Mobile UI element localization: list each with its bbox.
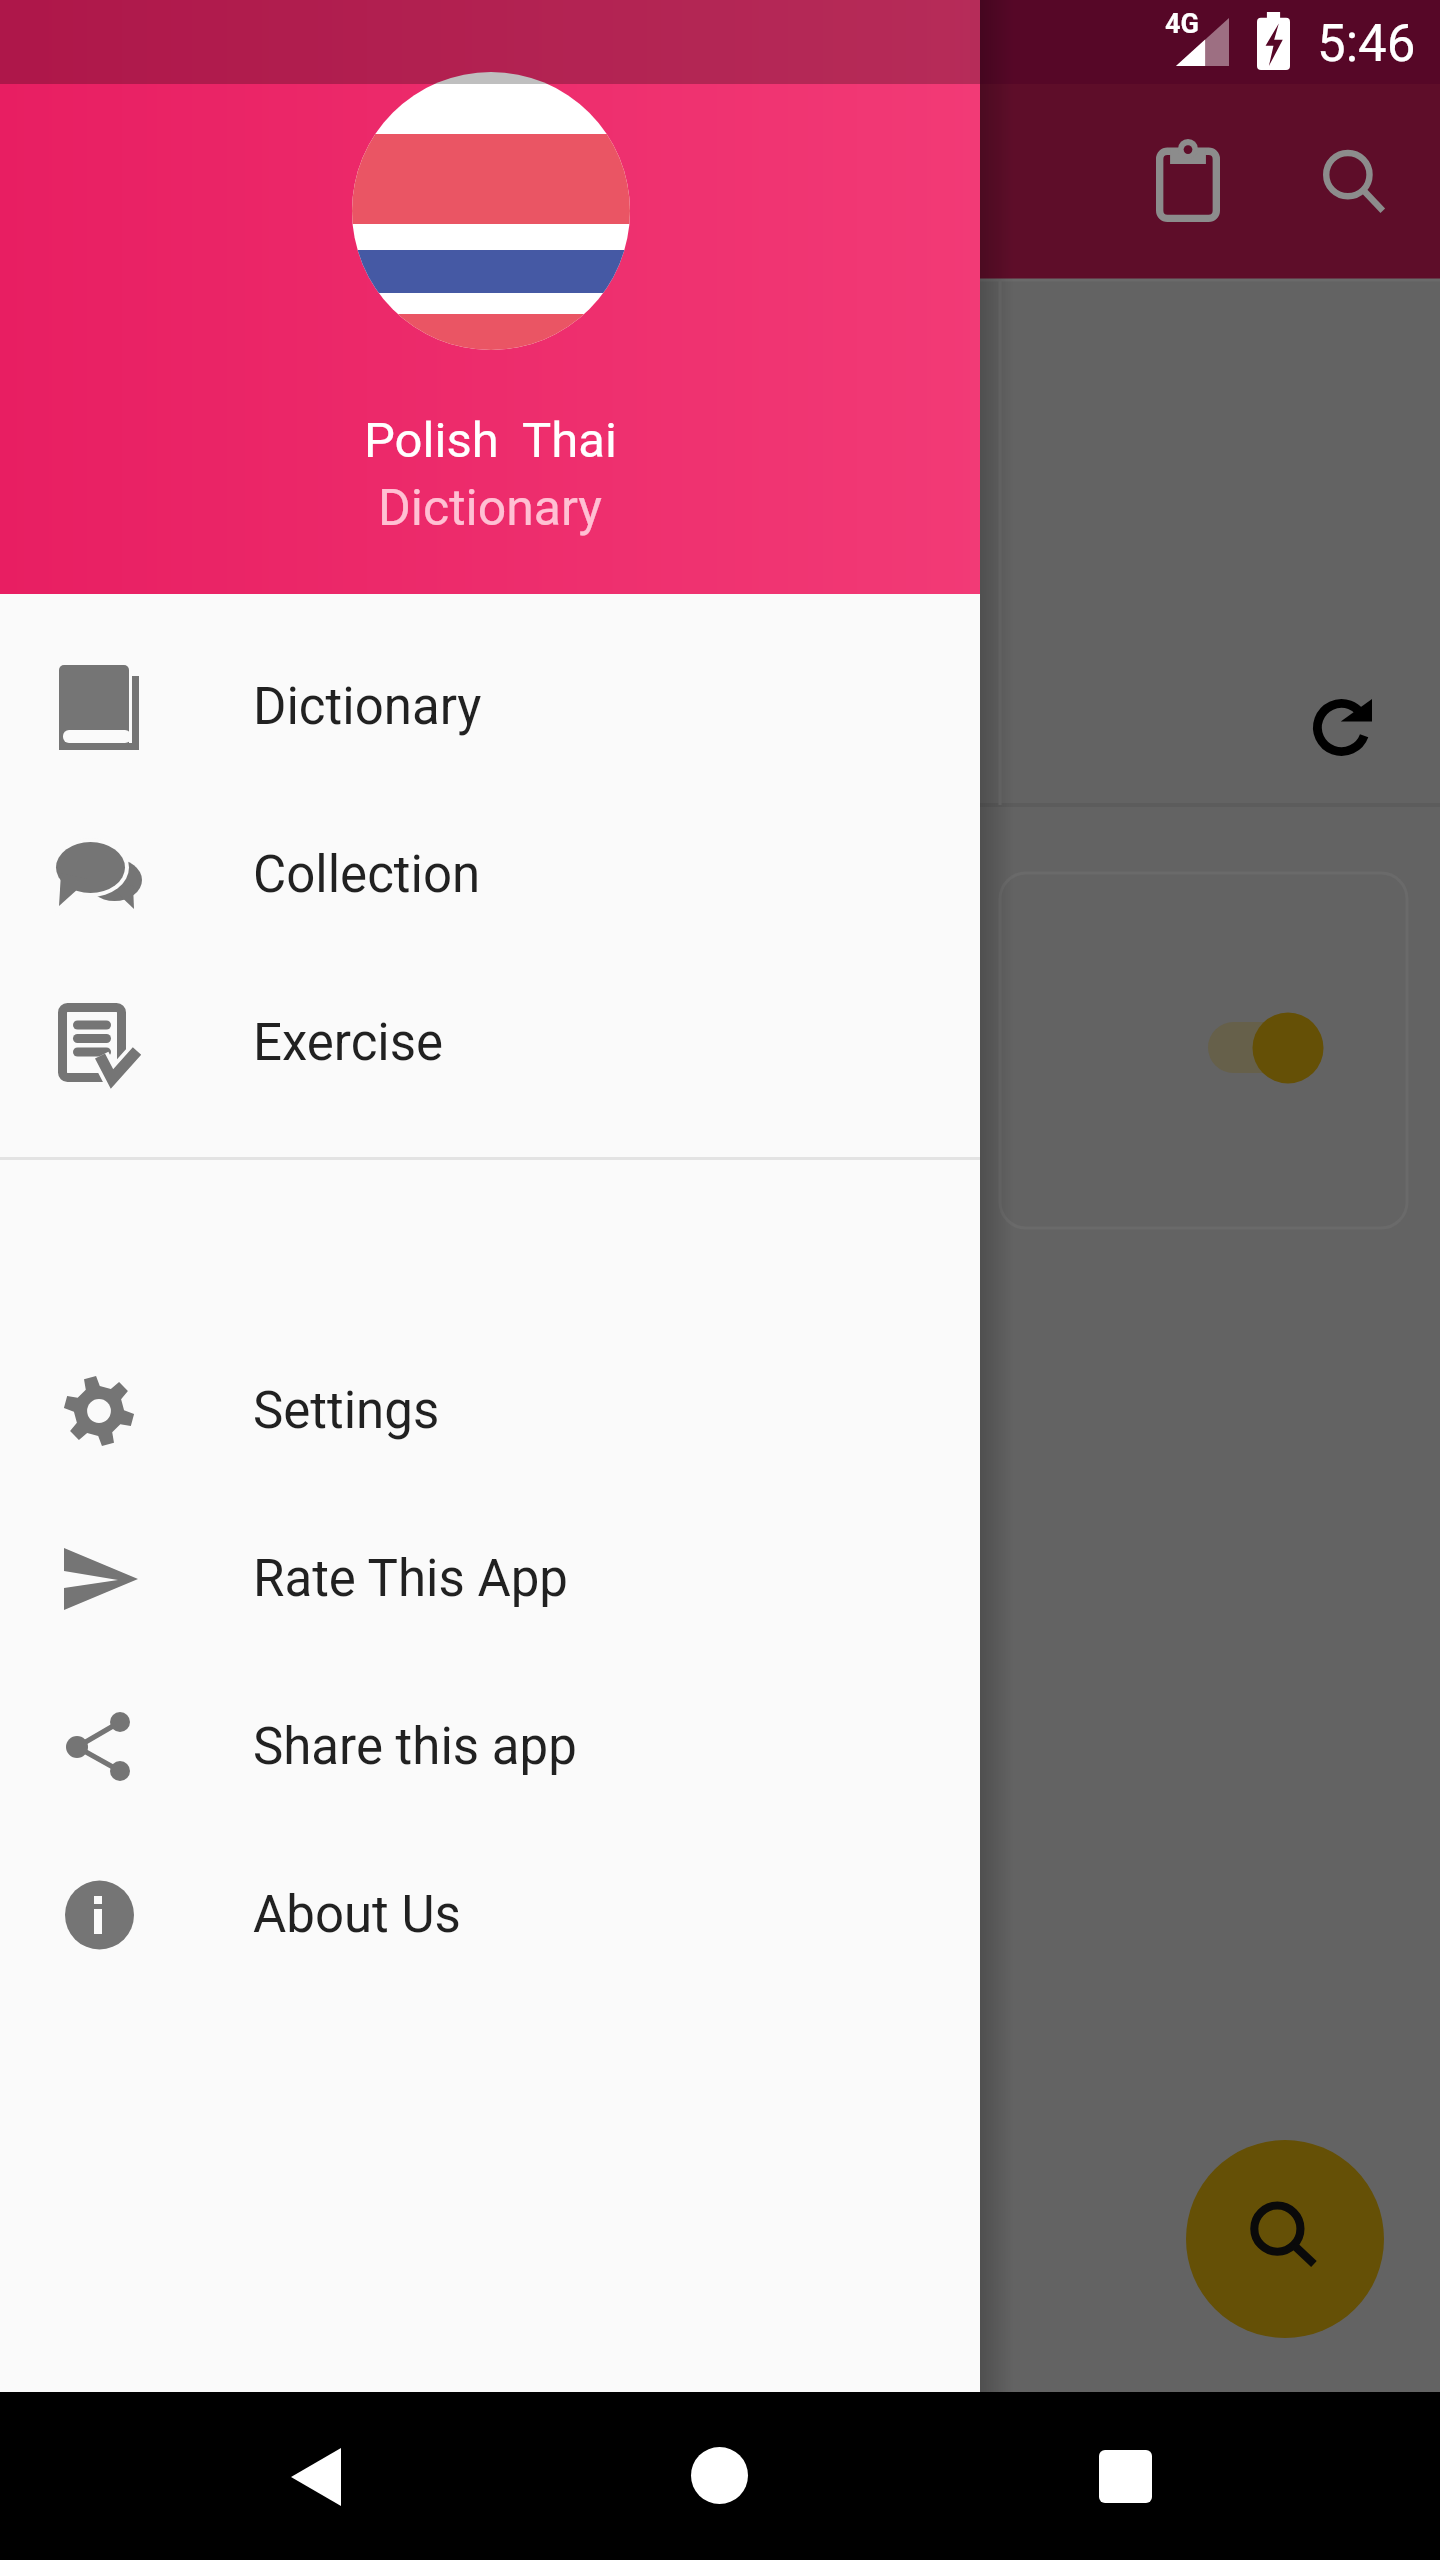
staticText: Share this app — [253, 1717, 577, 1777]
button[interactable]: Refresh — [1288, 673, 1396, 781]
staticText: Settings — [253, 1381, 440, 1441]
staticText: About Us — [253, 1885, 461, 1945]
button[interactable]: Home — [649, 2392, 789, 2560]
staticText: Dictionary — [378, 479, 603, 538]
button[interactable]: Search — [1186, 2140, 1384, 2338]
button[interactable]: Back — [246, 2392, 386, 2560]
button[interactable]: Search — [1301, 128, 1409, 236]
staticText: Collection — [253, 845, 481, 905]
button[interactable]: Share this app — [0, 1663, 980, 1831]
button[interactable]: Collection — [0, 791, 980, 959]
staticText: 5:46 — [1317, 14, 1416, 74]
button[interactable]: Close navigation drawer — [980, 0, 1440, 2560]
staticText: 4G — [1165, 8, 1199, 40]
button[interactable]: Rate This App — [0, 1495, 980, 1663]
staticText: Rate This App — [253, 1549, 568, 1609]
staticText: Dictionary — [253, 677, 482, 737]
button[interactable]: Clipboard — [1134, 128, 1242, 236]
button[interactable]: Toggle — [1198, 1003, 1333, 1093]
staticText: Exercise — [253, 1013, 444, 1073]
button[interactable]: About Us — [0, 1831, 980, 1999]
button[interactable]: Settings — [0, 1327, 980, 1495]
button[interactable]: Recents — [1056, 2392, 1196, 2560]
button[interactable]: Dictionary — [0, 623, 980, 791]
button[interactable]: Exercise — [0, 959, 980, 1127]
staticText: Polish Thai — [364, 412, 617, 469]
